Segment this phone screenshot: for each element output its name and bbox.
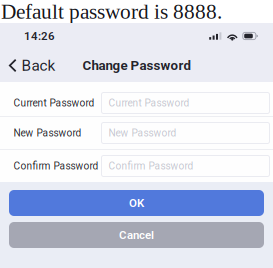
staticText: Confirm Password bbox=[13, 160, 98, 172]
button[interactable]: Back bbox=[0, 49, 64, 82]
staticText: Cancel bbox=[119, 228, 154, 242]
staticText: 14:26 bbox=[24, 29, 55, 43]
staticText: New Password bbox=[108, 127, 176, 139]
staticText: Current Password bbox=[108, 97, 189, 109]
staticText: Current Password bbox=[13, 97, 94, 109]
staticText: OK bbox=[129, 196, 144, 210]
button[interactable]: OK bbox=[9, 190, 264, 216]
staticText: Change Password bbox=[83, 58, 192, 73]
staticText: New Password bbox=[13, 127, 81, 139]
staticText: Back bbox=[22, 56, 56, 74]
staticText: Default password is 8888. bbox=[1, 0, 222, 23]
staticText: Confirm Password bbox=[108, 160, 193, 172]
button[interactable]: Cancel bbox=[9, 222, 264, 248]
